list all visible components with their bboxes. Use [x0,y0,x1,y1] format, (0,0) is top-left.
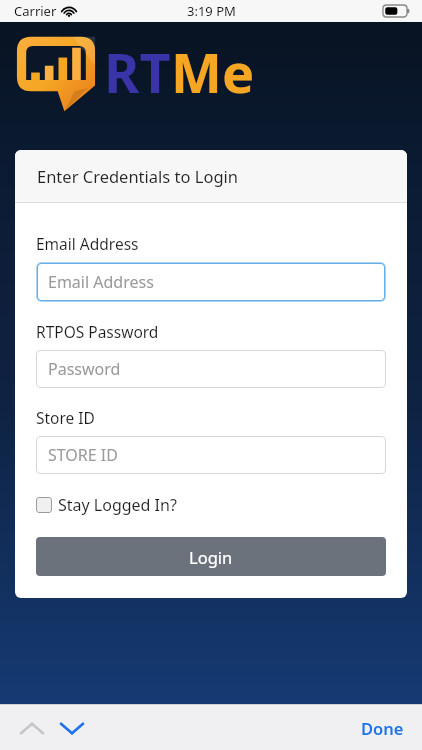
staticText: Stay Logged In? [58,494,177,516]
staticText: Done [361,717,404,739]
staticText: RTPOS Password [36,321,159,342]
staticText: Login [189,546,233,568]
button[interactable]: Done [357,713,408,743]
button[interactable]: Login [36,537,386,576]
staticText: Carrier [14,2,57,20]
button[interactable]: Next field [56,712,88,744]
staticText: Enter Credentials to Login [37,165,238,187]
staticText: Store ID [36,407,95,428]
staticText: 3:19 PM [187,2,236,20]
staticText: STORE ID [48,444,118,466]
button[interactable]: Stay Logged In? [36,491,177,519]
staticText: RT [104,35,171,109]
button[interactable]: STORE ID [36,436,386,474]
button[interactable]: Password [36,350,386,388]
button[interactable]: Email Address [36,262,386,302]
staticText: Password [48,358,121,380]
button[interactable]: Previous field [16,712,48,744]
staticText: Email Address [36,233,139,254]
staticText: Email Address [48,271,154,293]
staticText: Me [171,35,255,109]
